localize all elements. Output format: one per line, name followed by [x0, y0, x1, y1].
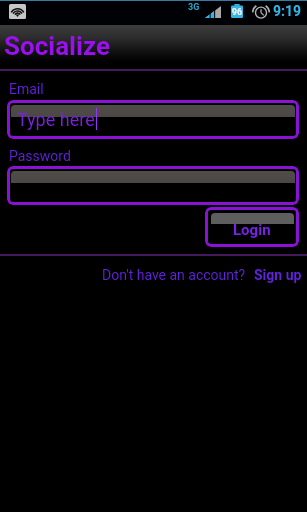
button[interactable]: Login [205, 207, 299, 247]
staticText: Email [9, 81, 44, 97]
staticText: Login [233, 221, 271, 239]
other: Wi-Fi [9, 4, 26, 19]
other: Signal strength [205, 6, 221, 18]
staticText: 3G [188, 2, 200, 13]
staticText: Sign up [254, 267, 302, 283]
staticText: 9:19 [273, 3, 302, 19]
staticText: Type here [17, 109, 95, 130]
staticText: Don't have an account? [102, 267, 246, 283]
button[interactable]: Type here [7, 100, 299, 139]
staticText: 96 [231, 7, 243, 18]
button[interactable]: Sign up [254, 267, 302, 283]
other: Alarm set [253, 4, 269, 20]
staticText: Password [9, 148, 71, 164]
button[interactable] [7, 166, 299, 205]
staticText: Socialize [4, 31, 110, 61]
other: Battery 96 percent [231, 4, 243, 18]
